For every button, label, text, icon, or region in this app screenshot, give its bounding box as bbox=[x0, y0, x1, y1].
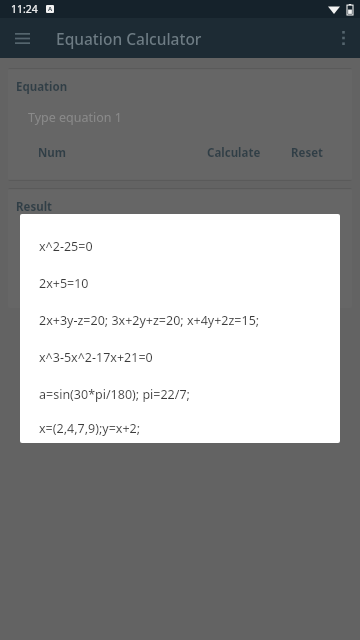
staticText: 2x+3y-z=20; 3x+2y+z=20; x+4y+2z=15; bbox=[39, 312, 260, 329]
button[interactable]: Num bbox=[8, 145, 73, 161]
staticText: Num bbox=[38, 145, 67, 161]
button[interactable]: Reset bbox=[287, 141, 328, 165]
staticText: 11:24 bbox=[11, 2, 38, 16]
button[interactable]: 2x+3y-z=20; 3x+2y+z=20; x+4y+2z=15; bbox=[20, 302, 340, 339]
button[interactable]: 2x+5=10 bbox=[20, 265, 340, 302]
button[interactable]: x^3-5x^2-17x+21=0 bbox=[20, 339, 340, 376]
staticText: 2x+5=10 bbox=[39, 275, 89, 292]
button[interactable]: More options bbox=[330, 25, 356, 51]
button[interactable]: x=(2,4,7,9);y=x+2; bbox=[20, 413, 340, 443]
staticText: x=(2,4,7,9);y=x+2; bbox=[39, 420, 141, 437]
staticText: x^2-25=0 bbox=[39, 238, 93, 255]
staticText: Calculate bbox=[207, 145, 261, 161]
staticText: Result bbox=[16, 199, 53, 215]
staticText: A bbox=[48, 5, 53, 13]
staticText: Equation Calculator bbox=[56, 28, 202, 49]
button[interactable]: Open navigation drawer bbox=[10, 26, 34, 50]
button[interactable]: Calculate bbox=[203, 141, 265, 165]
staticText: x^3-5x^2-17x+21=0 bbox=[39, 349, 153, 366]
staticText: a=sin(30*pi/180); pi=22/7; bbox=[39, 386, 190, 403]
staticText: Type equation 1 bbox=[28, 109, 122, 126]
button[interactable]: x^2-25=0 bbox=[20, 228, 340, 265]
button[interactable]: a=sin(30*pi/180); pi=22/7; bbox=[20, 376, 340, 413]
staticText: Equation bbox=[16, 79, 68, 95]
staticText: Reset bbox=[291, 145, 324, 161]
